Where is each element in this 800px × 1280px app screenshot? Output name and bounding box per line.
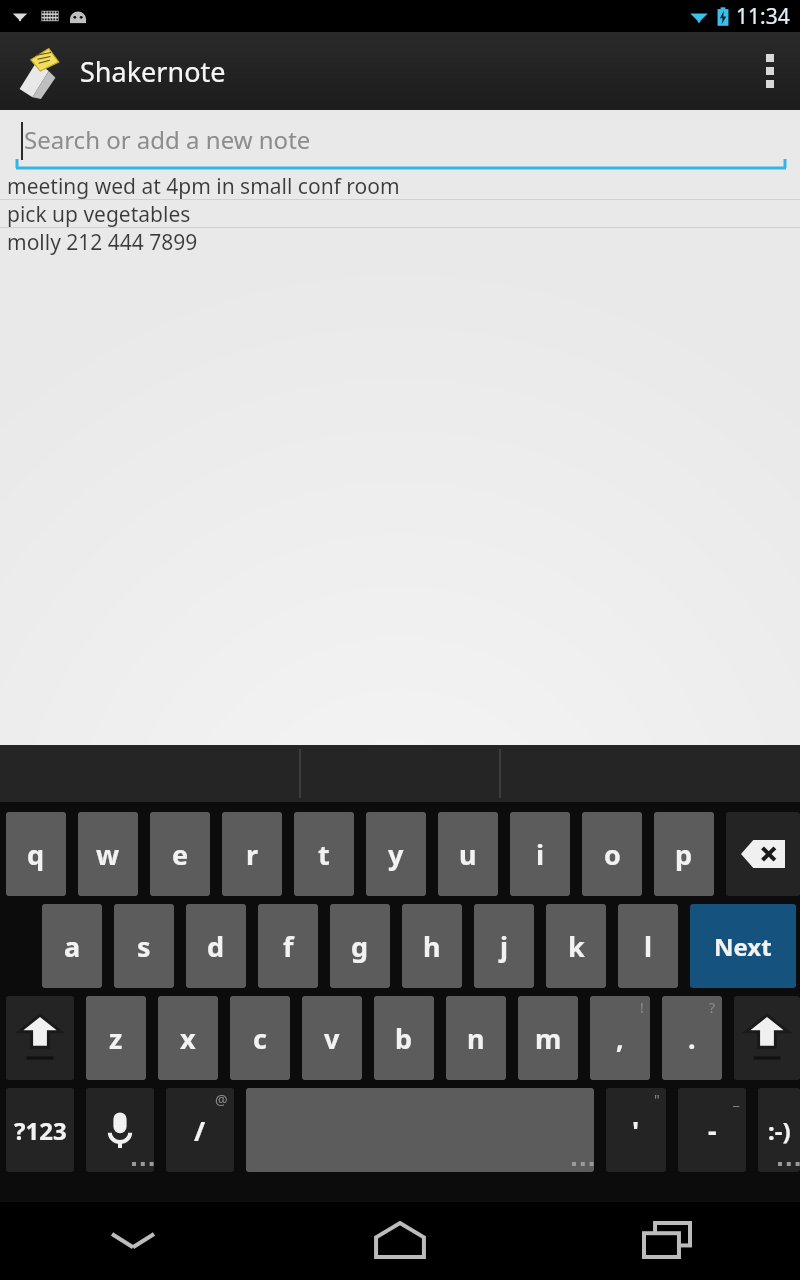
button[interactable]: o (582, 812, 642, 896)
staticText: z (109, 1020, 123, 1057)
button[interactable]: meeting wed at 4pm in small conf room (0, 172, 800, 200)
button[interactable]: a (42, 904, 102, 988)
button[interactable]: Hide keyboard (0, 1202, 266, 1278)
button[interactable]: Shift (6, 996, 74, 1080)
button[interactable]: Backspace (726, 812, 800, 896)
staticText: ? (709, 998, 716, 1017)
staticText: ' (632, 1112, 640, 1149)
button[interactable]: f (258, 904, 318, 988)
staticText: w (96, 836, 120, 873)
staticText: f (283, 928, 294, 965)
staticText: meeting wed at 4pm in small conf room (7, 172, 400, 199)
button[interactable]: v (302, 996, 362, 1080)
staticText: c (253, 1020, 267, 1057)
staticText: s (137, 928, 151, 965)
button[interactable]: pick up vegetables (0, 200, 800, 228)
staticText: t (318, 836, 330, 873)
staticText: g (351, 928, 369, 965)
button[interactable]: Search or add a new note (0, 110, 800, 172)
staticText: o (604, 836, 621, 873)
button[interactable]: t (294, 812, 354, 896)
button[interactable]: Home (266, 1202, 533, 1278)
staticText: Next (714, 930, 772, 963)
button[interactable]: y (366, 812, 426, 896)
button[interactable]: c (230, 996, 290, 1080)
button[interactable]: j (474, 904, 534, 988)
staticText: h (423, 928, 441, 965)
button[interactable]: p (654, 812, 714, 896)
staticText: d (207, 928, 225, 965)
staticText: . (688, 1020, 696, 1057)
staticText: , (616, 1020, 624, 1057)
button[interactable]: l (618, 904, 678, 988)
staticText: v (324, 1020, 340, 1057)
button[interactable]: q (6, 812, 66, 896)
button[interactable]: r (222, 812, 282, 896)
button[interactable]: x (158, 996, 218, 1080)
staticText: molly 212 444 7899 (7, 228, 198, 255)
staticText: ! (640, 998, 644, 1017)
button[interactable]: d (186, 904, 246, 988)
staticText: a (64, 928, 81, 965)
staticText: / (194, 1112, 206, 1149)
staticText: i (536, 836, 545, 873)
button[interactable]: , (590, 996, 650, 1080)
button[interactable]: k (546, 904, 606, 988)
staticText: - (708, 1112, 717, 1149)
button[interactable]: u (438, 812, 498, 896)
staticText: q (27, 836, 45, 873)
button[interactable]: h (402, 904, 462, 988)
staticText: m (535, 1020, 562, 1057)
staticText: y (388, 836, 404, 873)
staticText: @ (215, 1090, 228, 1109)
staticText: x (180, 1020, 196, 1057)
staticText: Shakernote (80, 53, 226, 90)
button[interactable]: n (446, 996, 506, 1080)
staticText: n (467, 1020, 485, 1057)
staticText: u (459, 836, 477, 873)
staticText: p (675, 836, 693, 873)
button[interactable]: Next (690, 904, 796, 988)
staticText: " (654, 1090, 660, 1109)
button[interactable]: m (518, 996, 578, 1080)
staticText: r (246, 836, 259, 873)
button[interactable]: b (374, 996, 434, 1080)
staticText: e (172, 836, 189, 873)
button[interactable]: ' (606, 1088, 666, 1172)
button[interactable]: w (78, 812, 138, 896)
staticText: b (395, 1020, 413, 1057)
button[interactable]: molly 212 444 7899 (0, 228, 800, 256)
button[interactable]: . (662, 996, 722, 1080)
staticText: k (568, 928, 585, 965)
button[interactable]: Shift (734, 996, 800, 1080)
staticText: pick up vegetables (7, 200, 191, 227)
button[interactable]: z (86, 996, 146, 1080)
staticText: :-) (768, 1114, 791, 1147)
staticText: ?123 (14, 1114, 67, 1147)
button[interactable]: Voice input (86, 1088, 154, 1172)
staticText: j (500, 928, 509, 965)
button[interactable]: ?123 (6, 1088, 74, 1172)
staticText: Search or add a new note (24, 123, 311, 156)
button[interactable]: i (510, 812, 570, 896)
staticText: _ (733, 1090, 740, 1109)
button[interactable]: e (150, 812, 210, 896)
button[interactable]: More options (740, 32, 800, 110)
staticText: l (644, 928, 653, 965)
staticText: 11:34 (736, 2, 790, 31)
button[interactable]: / (166, 1088, 234, 1172)
button[interactable]: Recent apps (533, 1202, 800, 1278)
button[interactable]: :-) (758, 1088, 800, 1172)
other: App icon (14, 43, 70, 99)
button[interactable]: - (678, 1088, 746, 1172)
button[interactable]: g (330, 904, 390, 988)
button[interactable]: s (114, 904, 174, 988)
